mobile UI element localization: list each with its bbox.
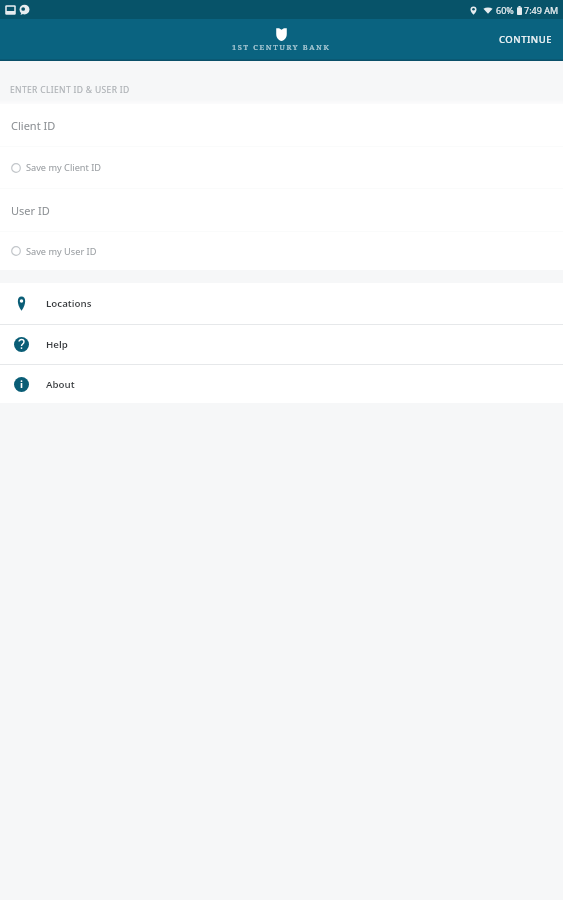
button[interactable]: CONTINUE [485,19,563,59]
staticText: Client ID [11,118,56,133]
button[interactable]: Help [0,325,563,364]
staticText: Help [46,338,68,351]
staticText: 1ST CENTURY BANK [232,42,331,52]
staticText: Save my User ID [26,245,97,258]
staticText: About [46,378,75,391]
staticText: Locations [46,297,92,310]
other: About [14,377,29,392]
button[interactable]: User ID [0,189,563,231]
other: Locations [16,296,27,311]
button[interactable]: Client ID [0,104,563,146]
button[interactable]: Locations [0,283,563,324]
other: Help [14,337,29,352]
button[interactable]: Save my Client ID [0,147,563,188]
staticText: Save my Client ID [26,161,102,174]
staticText: 60% [496,4,514,16]
staticText: CONTINUE [499,33,553,46]
staticText: ENTER CLIENT ID & USER ID [10,84,130,96]
button[interactable]: About [0,365,563,403]
staticText: User ID [11,203,50,218]
staticText: 7:49 AM [524,4,559,16]
button[interactable]: Save my User ID [0,232,563,270]
